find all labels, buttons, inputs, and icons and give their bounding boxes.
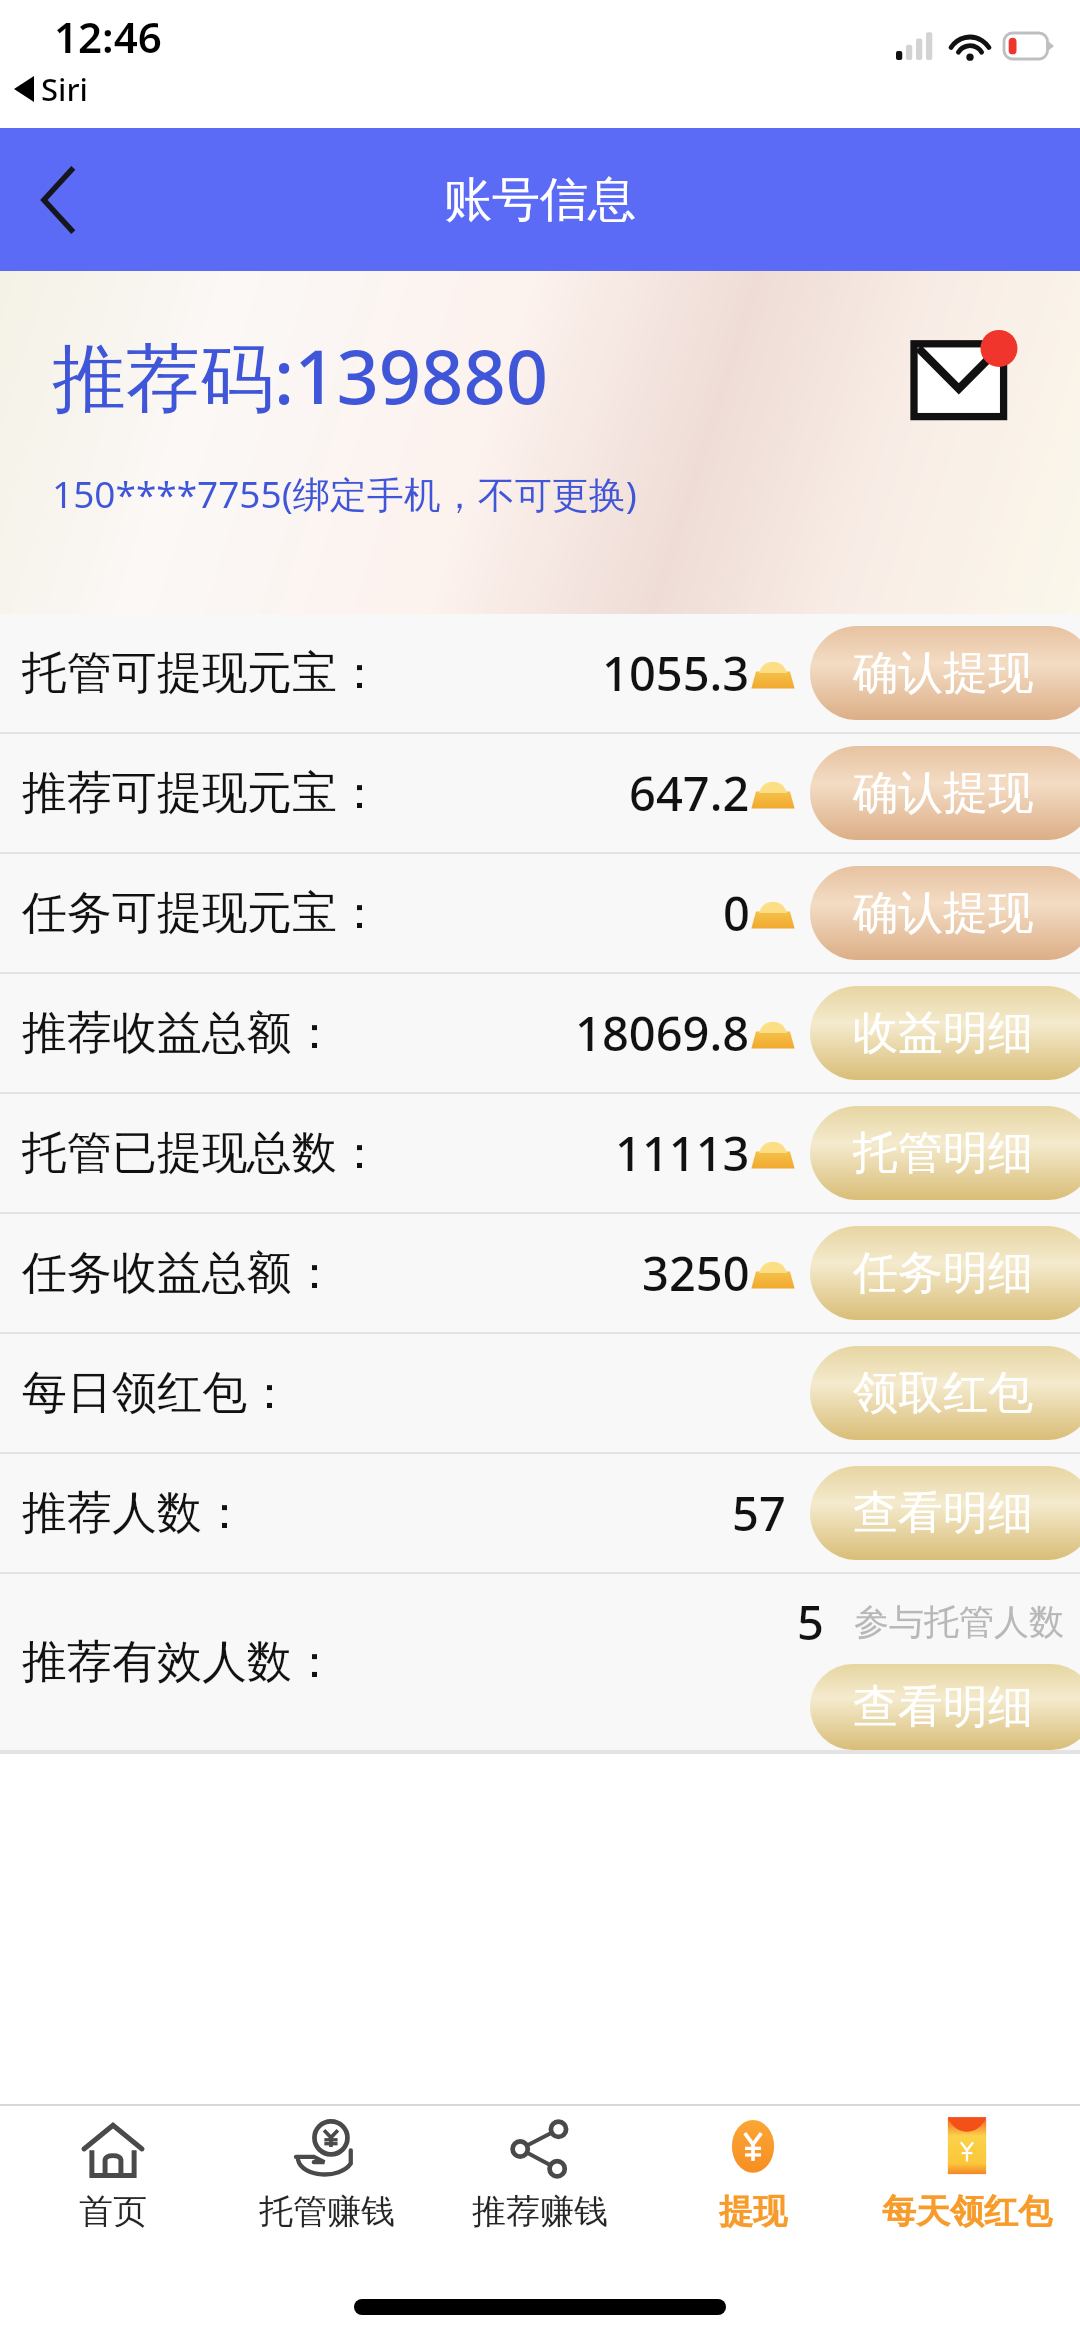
- staticText: 1055.3: [602, 641, 750, 705]
- button[interactable]: Messages: [914, 323, 1026, 427]
- staticText: 推荐可提现元宝：: [22, 765, 382, 822]
- button[interactable]: 托管已提现总数：: [0, 1094, 1080, 1212]
- button[interactable]: 确认提现: [810, 866, 1080, 960]
- staticText: 推荐码:139880: [52, 325, 549, 426]
- staticText: 任务可提现元宝：: [22, 885, 382, 942]
- staticText: 11113: [615, 1121, 750, 1185]
- staticText: 推荐人数：: [22, 1485, 247, 1542]
- staticText: 确认提现: [853, 885, 1033, 942]
- button[interactable]: 查看明细: [810, 1466, 1080, 1560]
- button[interactable]: 收益明细: [810, 986, 1080, 1080]
- staticText: 每天领红包: [882, 2190, 1052, 2233]
- staticText: 任务明细: [853, 1245, 1033, 1302]
- button[interactable]: 任务可提现元宝：: [0, 854, 1080, 972]
- staticText: 任务收益总额：: [22, 1245, 337, 1302]
- button[interactable]: 推荐赚钱: [440, 2116, 640, 2233]
- button[interactable]: 每天领红包: [867, 2116, 1067, 2233]
- button[interactable]: 任务收益总额：: [0, 1214, 1080, 1332]
- button[interactable]: 推荐人数：: [0, 1454, 1080, 1572]
- staticText: 推荐赚钱: [472, 2190, 608, 2233]
- staticText: 领取红包: [853, 1365, 1033, 1422]
- button[interactable]: 确认提现: [810, 746, 1080, 840]
- button[interactable]: 推荐收益总额：: [0, 974, 1080, 1092]
- button[interactable]: 提现: [653, 2116, 853, 2233]
- staticText: 账号信息: [444, 170, 636, 230]
- staticText: 确认提现: [853, 765, 1033, 822]
- button[interactable]: 推荐有效人数：: [0, 1574, 1080, 1750]
- staticText: 647.2: [629, 761, 750, 825]
- button[interactable]: 领取红包: [810, 1346, 1080, 1440]
- button[interactable]: 托管明细: [810, 1106, 1080, 1200]
- staticText: 0: [723, 881, 750, 945]
- button[interactable]: 首页: [13, 2116, 213, 2233]
- button[interactable]: 任务明细: [810, 1226, 1080, 1320]
- button[interactable]: 托管可提现元宝：: [0, 614, 1080, 732]
- button[interactable]: Back: [0, 128, 115, 271]
- button[interactable]: 每日领红包：: [0, 1334, 1080, 1452]
- staticText: 12:46: [54, 8, 162, 65]
- staticText: 5: [797, 1590, 824, 1654]
- staticText: 推荐有效人数：: [22, 1634, 337, 1691]
- staticText: 查看明细: [853, 1485, 1033, 1542]
- staticText: 确认提现: [853, 645, 1033, 702]
- staticText: 每日领红包：: [22, 1365, 292, 1422]
- button[interactable]: 查看明细: [810, 1664, 1080, 1750]
- button[interactable]: 托管赚钱: [227, 2116, 427, 2233]
- staticText: 托管已提现总数：: [22, 1125, 382, 1182]
- staticText: 提现: [719, 2190, 787, 2233]
- staticText: 查看明细: [853, 1679, 1033, 1736]
- staticText: 首页: [79, 2190, 147, 2233]
- staticText: 推荐收益总额：: [22, 1005, 337, 1062]
- staticText: 收益明细: [853, 1005, 1033, 1062]
- staticText: Siri: [41, 68, 88, 110]
- button[interactable]: 推荐可提现元宝：: [0, 734, 1080, 852]
- staticText: 托管明细: [853, 1125, 1033, 1182]
- staticText: 18069.8: [575, 1001, 750, 1065]
- staticText: 150****7755(绑定手机，不可更换): [52, 468, 637, 519]
- button[interactable]: 确认提现: [810, 626, 1080, 720]
- staticText: 参与托管人数: [854, 1600, 1064, 1644]
- staticText: 57: [732, 1481, 786, 1545]
- staticText: 托管赚钱: [259, 2190, 395, 2233]
- staticText: 3250: [642, 1241, 750, 1305]
- staticText: 托管可提现元宝：: [22, 645, 382, 702]
